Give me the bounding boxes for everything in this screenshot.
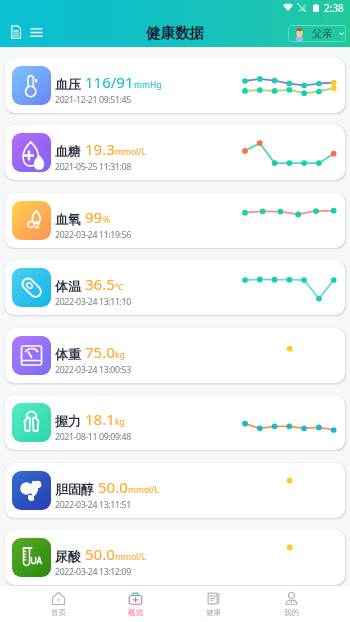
staticText: 99 [85,207,103,227]
button[interactable]: 血氧 [5,193,345,248]
staticText: 2021-05-25 11:31:08 [55,161,131,173]
staticText: % [103,214,111,226]
staticText: kg [115,416,125,428]
staticText: 75.0 [85,342,115,362]
staticText: 19.3 [85,139,115,159]
button[interactable]: 尿酸 [5,530,345,585]
staticText: 父亲 [312,27,332,40]
staticText: 血氧 [55,211,81,227]
staticText: 116/91 [85,72,134,92]
button[interactable]: Select family member [288,25,346,42]
staticText: 我的 [284,608,299,617]
staticText: 2021-12-21 09:51:45 [55,94,131,106]
staticText: 2022-03-24 13:00:53 [55,364,131,376]
staticText: ℃ [115,281,124,293]
staticText: 2022-03-24 13:12:09 [55,566,131,578]
button[interactable]: 首页 [20,586,97,622]
staticText: mmHg [134,79,162,91]
staticText: 尿酸 [55,548,81,564]
button[interactable]: 体温 [5,260,345,315]
button[interactable]: Menu [24,20,48,44]
staticText: 健康数据 [146,24,204,42]
staticText: 概览 [128,608,143,617]
button[interactable]: 体重 [5,328,345,383]
button[interactable]: 血糖 [5,125,345,180]
staticText: mmol/L [115,146,146,158]
staticText: 2022-03-24 13:11:10 [55,296,131,308]
staticText: 血糖 [55,143,81,159]
staticText: 首页 [51,608,66,617]
button[interactable]: 胆固醇 [5,463,345,518]
staticText: 36.5 [85,274,115,294]
staticText: 血压 [55,76,81,92]
staticText: 体重 [55,346,81,362]
staticText: mmol/L [128,484,159,496]
staticText: 2021-08-11 09:09:48 [55,431,131,443]
button[interactable]: 健康 [174,586,252,622]
staticText: 2:38 [324,1,344,15]
staticText: 握力 [55,413,81,429]
staticText: 50.0 [98,477,128,497]
staticText: 胆固醇 [55,481,94,497]
staticText: 18.1 [85,409,115,429]
button[interactable]: Reports [4,20,28,44]
staticText: 2022-03-24 11:19:56 [55,229,131,241]
button[interactable]: 概览 [97,586,174,622]
staticText: 健康 [206,608,221,617]
staticText: 体温 [55,278,81,294]
staticText: 2022-03-24 13:11:51 [55,499,131,511]
staticText: 50.0 [85,544,115,564]
button[interactable]: 握力 [5,395,345,450]
button[interactable]: 血压 [5,58,345,113]
staticText: kg [115,349,125,361]
button[interactable]: 我的 [252,586,330,622]
staticText: mmol/L [115,551,146,563]
